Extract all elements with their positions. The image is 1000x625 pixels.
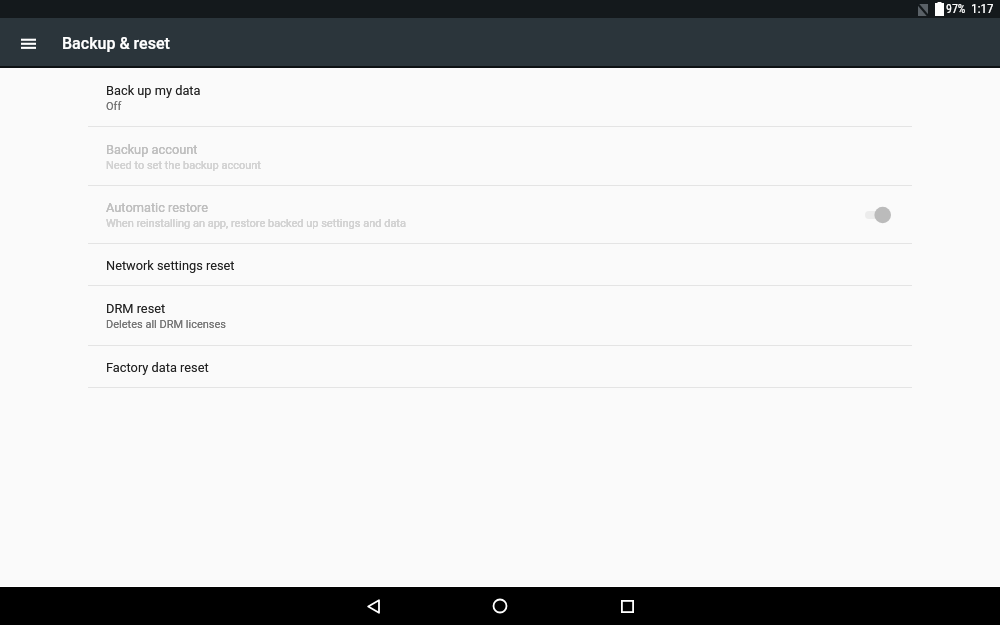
staticText: Off [106,100,122,113]
staticText: When reinstalling an app, restore backed… [106,217,406,230]
staticText: Automatic restore [106,200,209,215]
staticText: Need to set the backup account [106,159,261,172]
button[interactable]: Automatic restore [0,186,1000,244]
staticText: Deletes all DRM licenses [106,318,226,331]
button[interactable]: Backup account [0,127,1000,186]
staticText: Factory data reset [106,360,209,375]
button[interactable]: Home [476,587,524,625]
button[interactable]: DRM reset [0,286,1000,346]
staticText: 1:17 [971,1,994,16]
staticText: Backup account [106,142,198,157]
button[interactable]: Factory data reset [0,346,1000,388]
button[interactable]: Recent apps [603,587,651,625]
staticText: 97% [946,2,966,16]
staticText: Network settings reset [106,258,235,273]
staticText: Network settings reset [106,258,235,273]
button[interactable]: Network settings reset [0,244,1000,286]
staticText: Back up my data [106,83,201,98]
staticText: Need to set the backup account [106,159,261,172]
button[interactable]: Open navigation drawer [4,18,52,66]
staticText: Deletes all DRM licenses [106,318,226,331]
staticText: DRM reset [106,301,166,316]
staticText: When reinstalling an app, restore backed… [106,217,406,230]
button[interactable]: Back up my data [0,68,1000,127]
staticText: Factory data reset [106,360,209,375]
staticText: Automatic restore [106,200,209,215]
staticText: DRM reset [106,301,166,316]
staticText: Off [106,100,122,113]
staticText: Back up my data [106,83,201,98]
staticText: Backup & reset [62,34,170,53]
staticText: Backup account [106,142,198,157]
button[interactable]: Back [349,587,397,625]
